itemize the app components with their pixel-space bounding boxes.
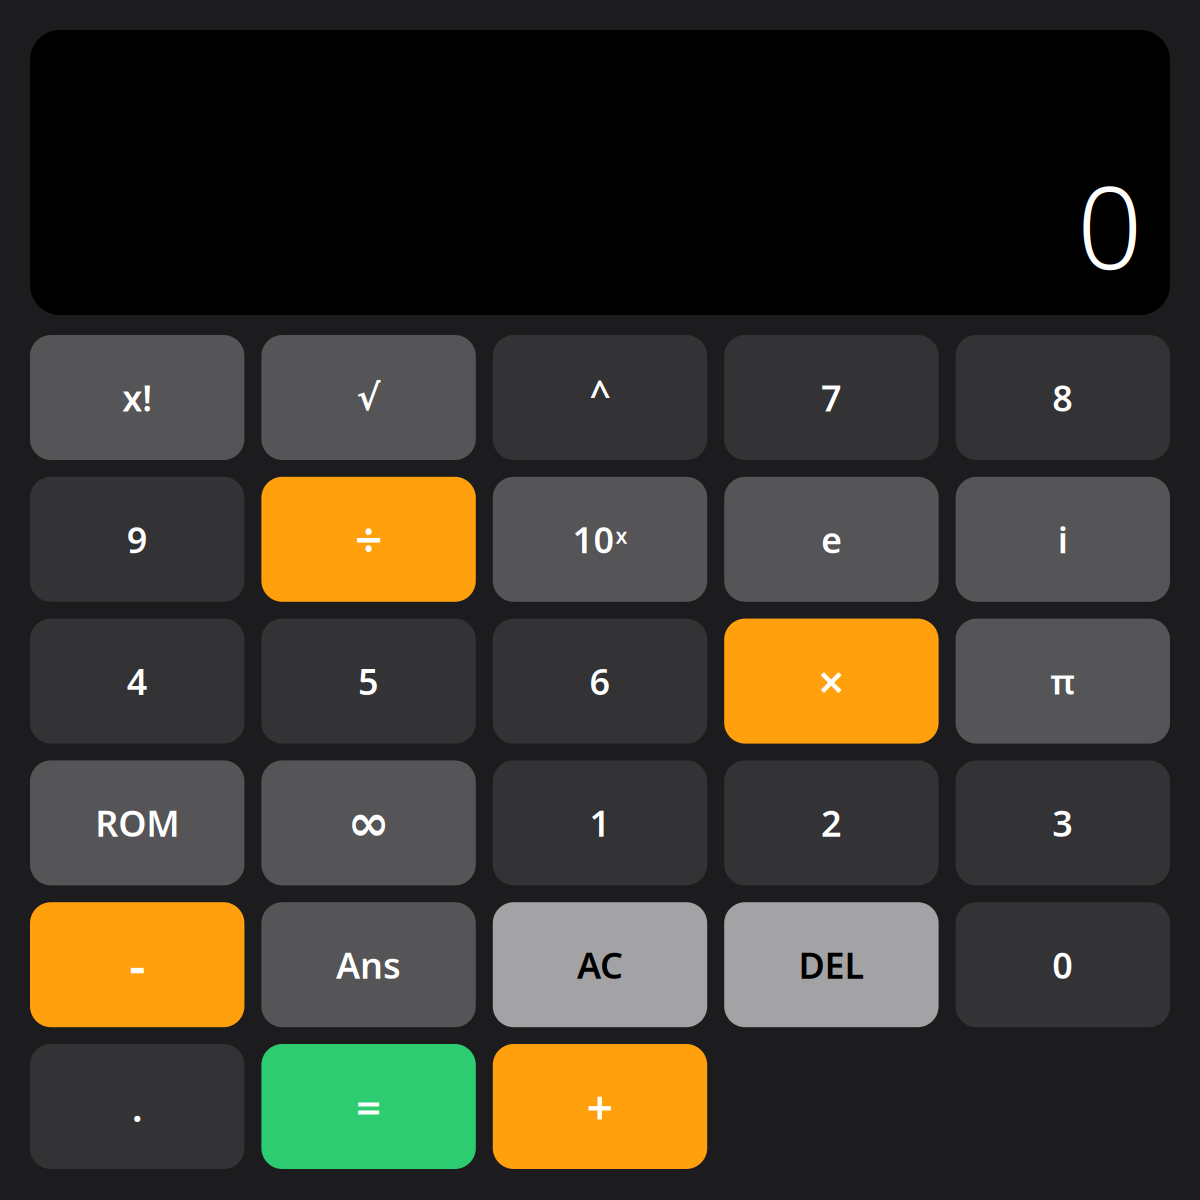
button[interactable]: Ans [261,902,476,1027]
staticText: ROM [95,799,179,847]
button[interactable]: AC [493,902,707,1027]
button[interactable]: DEL [724,902,939,1027]
staticText: 1 [589,799,610,847]
staticText: . [132,1080,143,1133]
staticText: x [615,521,627,550]
button[interactable]: 6 [493,619,707,744]
staticText: 4 [127,657,148,705]
staticText: ∞ [348,794,390,852]
button[interactable]: √ [261,335,476,460]
button[interactable]: x! [30,335,244,460]
staticText: 3 [1052,799,1073,847]
staticText: AC [577,941,623,989]
button[interactable]: e [724,477,939,602]
button[interactable]: 9 [30,477,244,602]
button[interactable]: 5 [261,619,476,744]
button[interactable]: 2 [724,760,939,885]
staticText: + [586,1075,613,1137]
staticText: 0 [1052,941,1073,989]
staticText: e [821,515,842,563]
staticText: ^ [589,369,610,418]
button[interactable]: 10 [493,477,707,602]
button[interactable]: . [30,1044,244,1169]
button[interactable]: 7 [724,335,939,460]
staticText: x! [122,374,152,421]
button[interactable]: ÷ [261,477,476,602]
staticText: 7 [821,374,842,421]
staticText: ÷ [355,507,382,571]
button[interactable]: π [956,619,1170,744]
staticText: √ [357,377,381,418]
staticText: 6 [589,657,610,705]
button[interactable]: - [30,902,244,1027]
staticText: DEL [798,941,864,989]
button[interactable]: ROM [30,760,244,885]
staticText: π [1050,658,1075,704]
staticText: = [356,1077,381,1136]
staticText: 0 [1077,149,1142,301]
staticText: 5 [358,657,379,705]
button[interactable]: 8 [956,335,1170,460]
staticText: - [129,931,145,998]
button[interactable]: ∞ [261,760,476,885]
button[interactable]: 1 [493,760,707,885]
button[interactable]: i [956,477,1170,602]
button[interactable]: + [493,1044,707,1169]
button[interactable]: 0 [956,902,1170,1027]
staticText: 10 [572,515,614,563]
staticText: × [818,650,845,712]
staticText: 2 [821,799,842,847]
staticText: 9 [127,515,148,563]
button[interactable]: × [724,619,939,744]
staticText: i [1058,515,1068,563]
button[interactable]: = [261,1044,476,1169]
button[interactable]: ^ [493,335,707,460]
button[interactable]: 3 [956,760,1170,885]
staticText: 8 [1052,374,1073,421]
button[interactable]: 4 [30,619,244,744]
staticText: Ans [336,941,401,989]
